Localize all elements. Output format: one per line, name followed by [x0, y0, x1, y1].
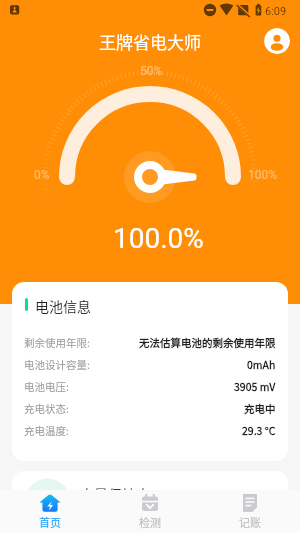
staticText: 0%	[34, 168, 50, 182]
staticText: 记账	[239, 514, 261, 530]
staticText: 电池信息	[35, 296, 91, 316]
staticText: 首页	[39, 514, 61, 530]
button[interactable]: Account	[264, 28, 290, 54]
button[interactable]: 记账	[200, 490, 300, 533]
staticText: 100%	[248, 168, 278, 182]
staticText: 29.3 °C	[242, 423, 276, 438]
staticText: 3905 mV	[234, 379, 276, 394]
staticText: 无法估算电池的剩余使用年限	[139, 335, 276, 350]
button[interactable]: 首页	[0, 490, 100, 533]
button[interactable]: 检测	[100, 490, 200, 533]
staticText: 剩余使用年限:	[24, 335, 90, 350]
staticText: 检测	[139, 514, 161, 530]
staticText: 电池设计容量:	[24, 357, 90, 372]
staticText: 王牌省电大师	[99, 29, 201, 54]
staticText: 充电中	[244, 401, 276, 416]
staticText: 6:09	[265, 5, 287, 18]
staticText: 充电温度:	[24, 423, 69, 438]
staticText: 电池电压:	[24, 379, 69, 394]
staticText: 50%	[140, 64, 163, 78]
staticText: 充电状态:	[24, 401, 69, 416]
staticText: 100.0%	[113, 222, 204, 255]
staticText: 0mAh	[247, 357, 276, 372]
staticText: 电量保持中	[80, 484, 150, 504]
